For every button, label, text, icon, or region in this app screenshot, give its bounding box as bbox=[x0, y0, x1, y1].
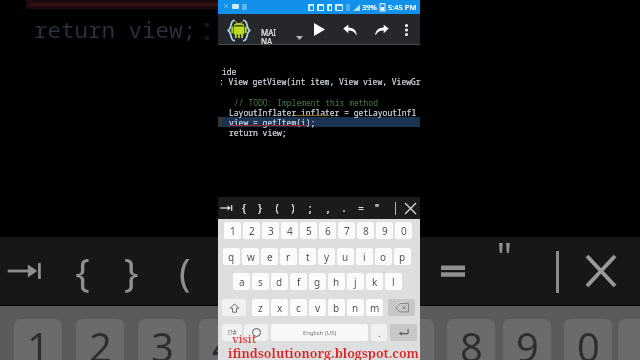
button[interactable]: q bbox=[223, 248, 240, 265]
button[interactable]: Select file bbox=[292, 31, 306, 45]
button[interactable]: Run bbox=[307, 17, 332, 42]
button[interactable]: c bbox=[290, 299, 307, 316]
button[interactable]: ( bbox=[269, 197, 285, 219]
staticText: . bbox=[378, 327, 381, 339]
staticText: j bbox=[354, 275, 357, 289]
staticText: ) bbox=[290, 201, 296, 215]
button[interactable]: 2 bbox=[243, 222, 260, 239]
staticText: 5 bbox=[306, 224, 312, 238]
button[interactable]: ) bbox=[285, 197, 301, 219]
staticText: NA bbox=[261, 36, 273, 47]
button[interactable]: e bbox=[261, 248, 278, 265]
staticText: a bbox=[239, 275, 245, 289]
button[interactable]: y bbox=[318, 248, 335, 265]
button[interactable]: x bbox=[271, 299, 288, 316]
staticText: ( bbox=[173, 245, 196, 297]
button[interactable]: t bbox=[299, 248, 316, 265]
button[interactable]: Redo bbox=[369, 17, 394, 42]
staticText: { bbox=[241, 201, 247, 215]
staticText: d bbox=[276, 275, 283, 289]
staticText: 8 bbox=[460, 319, 483, 360]
button[interactable]: Backspace bbox=[388, 299, 415, 316]
staticText: { bbox=[71, 245, 94, 297]
button[interactable]: AIDE bbox=[226, 17, 252, 43]
button[interactable]: u bbox=[337, 248, 354, 265]
button[interactable]: g bbox=[309, 273, 326, 290]
button[interactable]: 7 bbox=[338, 222, 355, 239]
staticText: u bbox=[342, 250, 349, 264]
staticText: i bbox=[363, 250, 366, 264]
button[interactable]: Shift bbox=[222, 299, 246, 316]
staticText: b bbox=[333, 301, 340, 315]
button[interactable]: ; bbox=[302, 197, 318, 219]
button[interactable]: Symbols bbox=[222, 324, 242, 341]
button[interactable]: 8 bbox=[357, 222, 374, 239]
button[interactable]: m bbox=[366, 299, 383, 316]
button[interactable]: 4 bbox=[281, 222, 298, 239]
button[interactable]: Period bbox=[371, 324, 387, 341]
staticText: 9 bbox=[382, 224, 388, 238]
button[interactable]: w bbox=[242, 248, 259, 265]
staticText: } bbox=[120, 245, 143, 297]
staticText: f bbox=[297, 275, 301, 289]
button[interactable]: Enter bbox=[390, 324, 417, 341]
button[interactable]: s bbox=[252, 273, 269, 290]
staticText: ( bbox=[274, 201, 280, 215]
button[interactable]: o bbox=[375, 248, 392, 265]
button[interactable]: " bbox=[369, 197, 385, 219]
button[interactable]: a bbox=[233, 273, 250, 290]
staticText: 7 bbox=[344, 224, 350, 238]
button[interactable]: . bbox=[336, 197, 352, 219]
button[interactable]: { bbox=[236, 197, 252, 219]
button[interactable]: k bbox=[366, 273, 383, 290]
button[interactable]: Close keyboard bbox=[402, 197, 418, 219]
staticText: n bbox=[352, 301, 359, 315]
staticText: r bbox=[286, 250, 291, 264]
button[interactable]: j bbox=[347, 273, 364, 290]
button[interactable]: 6 bbox=[319, 222, 336, 239]
staticText: English (US) bbox=[303, 329, 337, 337]
staticText: x bbox=[277, 301, 283, 315]
staticText: " bbox=[374, 201, 380, 215]
staticText: 5:45 PM bbox=[388, 2, 417, 12]
button[interactable]: 5 bbox=[300, 222, 317, 239]
button[interactable]: v bbox=[309, 299, 326, 316]
staticText: 7 bbox=[399, 319, 422, 360]
staticText: } bbox=[257, 201, 263, 215]
button[interactable]: 1 bbox=[224, 222, 241, 239]
staticText: q bbox=[228, 250, 235, 264]
button[interactable]: l bbox=[385, 273, 402, 290]
staticText: 39% bbox=[362, 2, 377, 12]
staticText: s bbox=[258, 275, 263, 289]
button[interactable]: n bbox=[347, 299, 364, 316]
button[interactable]: d bbox=[271, 273, 288, 290]
button[interactable]: Undo bbox=[337, 17, 362, 42]
button[interactable]: b bbox=[328, 299, 345, 316]
staticText: , bbox=[325, 201, 331, 215]
staticText: : View getView(int item, View view, View… bbox=[219, 76, 421, 87]
staticText: = bbox=[358, 201, 364, 215]
button[interactable]: f bbox=[290, 273, 307, 290]
button[interactable]: , bbox=[320, 197, 336, 219]
staticText: ide bbox=[222, 66, 237, 77]
staticText: return view; bbox=[34, 14, 197, 45]
button[interactable]: z bbox=[252, 299, 269, 316]
staticText: // TODO: Implement this method bbox=[234, 97, 378, 108]
button[interactable]: r bbox=[280, 248, 297, 265]
button[interactable]: 3 bbox=[262, 222, 279, 239]
staticText: z bbox=[258, 301, 263, 315]
staticText: " bbox=[493, 229, 516, 281]
button[interactable]: h bbox=[328, 273, 345, 290]
button[interactable]: p bbox=[394, 248, 411, 265]
staticText: v bbox=[315, 301, 321, 315]
button[interactable]: i bbox=[356, 248, 373, 265]
button[interactable]: Tab bbox=[218, 197, 235, 219]
staticText: g bbox=[314, 275, 321, 289]
button[interactable]: 9 bbox=[376, 222, 393, 239]
button[interactable]: English (US) bbox=[271, 324, 368, 341]
button[interactable]: 0 bbox=[395, 222, 412, 239]
button[interactable]: } bbox=[252, 197, 268, 219]
button[interactable]: = bbox=[353, 197, 369, 219]
button[interactable]: More options bbox=[396, 17, 416, 42]
button[interactable]: Emoji bbox=[244, 324, 268, 341]
